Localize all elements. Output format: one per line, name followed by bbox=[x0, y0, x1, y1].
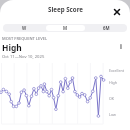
staticText: High bbox=[2, 42, 22, 53]
staticText: OK bbox=[109, 96, 115, 101]
staticText: Sleep Score bbox=[48, 5, 83, 13]
button[interactable]: 6M bbox=[87, 25, 126, 31]
staticText: Low bbox=[109, 112, 116, 117]
staticText: Oct 11—Nov 10, 2025 bbox=[2, 54, 45, 60]
button[interactable]: Close bbox=[107, 2, 127, 22]
button[interactable]: Info bbox=[115, 41, 126, 52]
staticText: High bbox=[109, 80, 118, 85]
staticText: Excellent bbox=[109, 68, 124, 73]
staticText: MOST FREQUENT LEVEL bbox=[2, 36, 48, 41]
button[interactable]: W bbox=[4, 25, 44, 31]
staticText: 6M bbox=[103, 25, 110, 31]
staticText: i bbox=[120, 42, 122, 51]
staticText: W bbox=[22, 25, 27, 31]
staticText: M bbox=[63, 25, 68, 31]
button[interactable]: M bbox=[46, 25, 85, 31]
